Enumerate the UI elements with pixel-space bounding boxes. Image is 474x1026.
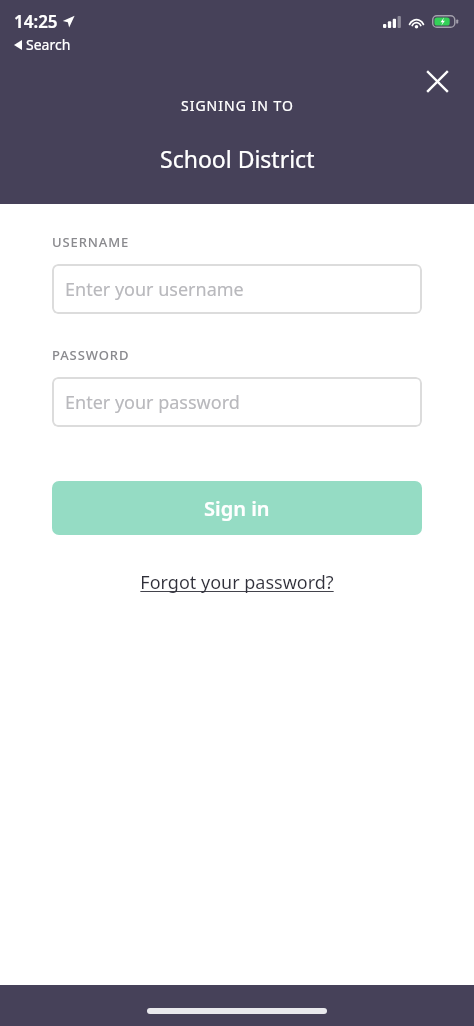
staticText: Enter your password — [65, 390, 240, 415]
button[interactable]: Sign in — [52, 481, 422, 535]
staticText: Forgot your password? — [140, 570, 334, 595]
staticText: 14:25 — [14, 10, 58, 33]
staticText: SIGNING IN TO — [181, 96, 294, 115]
staticText: School District — [160, 143, 315, 174]
staticText: Search — [26, 35, 71, 54]
staticText: Enter your username — [65, 277, 244, 302]
button[interactable]: Close — [415, 59, 459, 103]
staticText: PASSWORD — [52, 346, 130, 364]
button[interactable]: Enter your username — [52, 264, 422, 314]
staticText: Sign in — [204, 495, 270, 522]
button[interactable]: Forgot your password? — [132, 567, 342, 598]
staticText: USERNAME — [52, 233, 130, 251]
button[interactable]: Enter your password — [52, 377, 422, 427]
